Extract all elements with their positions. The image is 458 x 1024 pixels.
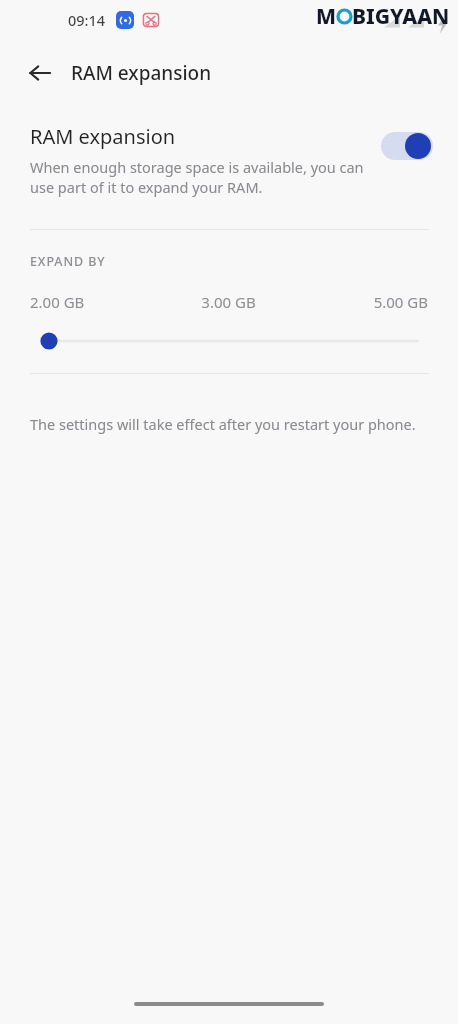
staticText: RAM expansion — [71, 60, 212, 86]
staticText: BIGYAAN — [352, 2, 450, 31]
button[interactable]: RAM expansion — [0, 123, 458, 198]
button[interactable]: Back — [18, 51, 62, 95]
button[interactable]: Expand by amount slider — [0, 324, 458, 358]
staticText: M — [316, 2, 337, 31]
staticText: The settings will take effect after you … — [30, 414, 416, 434]
button[interactable]: RAM expansion toggle — [381, 131, 433, 161]
staticText: RAM expansion — [30, 123, 176, 150]
staticText: 09:14 — [68, 10, 106, 30]
staticText: EXPAND BY — [30, 253, 106, 270]
staticText: When enough storage space is available, … — [30, 157, 364, 198]
staticText: 5.00 GB — [295, 292, 428, 312]
staticText: 2.00 GB — [30, 292, 162, 312]
staticText: 3.00 GB — [162, 292, 295, 312]
